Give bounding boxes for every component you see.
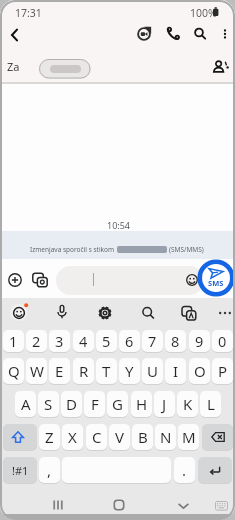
button[interactable]: Q — [3, 358, 24, 384]
button[interactable] — [31, 271, 49, 289]
button[interactable]: D — [61, 391, 82, 417]
staticText: 2 — [32, 331, 41, 351]
button[interactable]: 2 — [26, 330, 47, 352]
button[interactable]: 1 — [3, 330, 24, 352]
staticText: 9 — [195, 331, 204, 351]
staticText: R — [79, 361, 89, 381]
staticText: T — [102, 361, 111, 381]
button[interactable]: V — [109, 424, 130, 450]
staticText: 17:31 — [15, 6, 42, 20]
button[interactable] — [56, 266, 204, 295]
button[interactable]: R — [73, 358, 94, 384]
staticText: 1 — [9, 331, 18, 351]
button[interactable] — [203, 266, 229, 292]
staticText: 10:54 — [107, 219, 131, 231]
staticText: P — [218, 361, 228, 381]
staticText: . — [182, 460, 187, 480]
button[interactable] — [217, 305, 233, 321]
button[interactable]: O — [189, 358, 210, 384]
staticText: Za — [7, 59, 20, 74]
button[interactable]: W — [26, 358, 47, 384]
staticText: , — [47, 460, 52, 480]
staticText: N — [160, 427, 172, 447]
button[interactable]: L — [200, 391, 221, 417]
button[interactable] — [95, 303, 115, 323]
button[interactable] — [134, 24, 154, 44]
staticText: 0 — [218, 331, 227, 351]
button[interactable]: 4 — [73, 330, 94, 352]
staticText: (SMS/MMS) — [169, 245, 204, 254]
button[interactable]: 3 — [49, 330, 70, 352]
staticText: 3 — [55, 331, 64, 351]
button[interactable]: I — [165, 358, 186, 384]
button[interactable] — [179, 303, 199, 323]
button[interactable] — [39, 59, 91, 79]
button[interactable]: !#1 — [3, 457, 37, 483]
button[interactable]: . — [174, 457, 195, 483]
button[interactable]: K — [177, 391, 198, 417]
staticText: K — [183, 394, 193, 414]
button[interactable]: 0 — [212, 330, 233, 352]
staticText: A — [21, 394, 31, 414]
staticText: B — [138, 427, 148, 447]
button[interactable]: Z — [39, 424, 60, 450]
button[interactable]: 5 — [96, 330, 117, 352]
button[interactable]: , — [39, 457, 60, 483]
staticText: SMS — [208, 278, 224, 288]
button[interactable] — [9, 303, 29, 323]
staticText: Q — [8, 361, 20, 381]
button[interactable] — [47, 495, 68, 515]
staticText: E — [55, 361, 64, 381]
button[interactable]: G — [107, 391, 128, 417]
button[interactable]: M — [178, 424, 199, 450]
staticText: 5 — [102, 331, 111, 351]
button[interactable] — [210, 57, 232, 77]
button[interactable]: Y — [119, 358, 140, 384]
button[interactable]: A — [15, 391, 36, 417]
button[interactable] — [190, 24, 210, 44]
button[interactable]: F — [84, 391, 105, 417]
button[interactable] — [217, 26, 233, 42]
button[interactable]: P — [212, 358, 233, 384]
staticText: M — [182, 427, 196, 447]
staticText: W — [30, 361, 44, 381]
button[interactable] — [3, 424, 37, 450]
button[interactable] — [202, 424, 233, 450]
button[interactable] — [4, 25, 25, 45]
staticText: 8 — [171, 331, 180, 351]
staticText: V — [115, 427, 125, 447]
button[interactable] — [6, 271, 24, 289]
button[interactable]: N — [155, 424, 176, 450]
button[interactable]: U — [142, 358, 163, 384]
button[interactable]: 9 — [189, 330, 210, 352]
button[interactable]: J — [154, 391, 175, 417]
button[interactable]: 7 — [142, 330, 163, 352]
button[interactable]: H — [131, 391, 152, 417]
button[interactable] — [198, 457, 232, 483]
staticText: 4 — [79, 331, 88, 351]
button[interactable] — [172, 496, 194, 516]
staticText: G — [112, 394, 123, 414]
button[interactable] — [109, 495, 129, 515]
staticText: Z — [45, 427, 54, 447]
button[interactable]: X — [62, 424, 83, 450]
button[interactable]: E — [49, 358, 70, 384]
staticText: !#1 — [12, 463, 29, 478]
staticText: 7 — [148, 331, 157, 351]
staticText: C — [92, 427, 102, 447]
staticText: Izmenjava sporočil s stikom — [30, 245, 115, 254]
button[interactable]: B — [132, 424, 153, 450]
button[interactable] — [185, 273, 199, 287]
button[interactable]: 8 — [165, 330, 186, 352]
staticText: J — [162, 394, 167, 414]
staticText: X — [68, 427, 77, 447]
button[interactable]: 6 — [119, 330, 140, 352]
button[interactable] — [138, 303, 158, 323]
button[interactable] — [163, 24, 183, 44]
button[interactable]: T — [96, 358, 117, 384]
button[interactable] — [52, 302, 72, 322]
button[interactable]: S — [38, 391, 59, 417]
button[interactable]: C — [86, 424, 107, 450]
staticText: O — [194, 361, 206, 381]
